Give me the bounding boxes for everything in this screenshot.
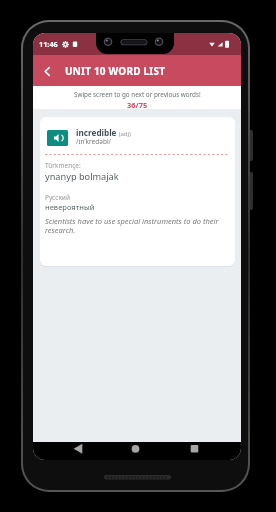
staticText: Swipe screen to go next or previous word… — [74, 90, 201, 99]
button[interactable] — [33, 442, 241, 460]
staticText: невероятный — [45, 202, 95, 212]
staticText: 36/75 — [127, 100, 148, 109]
staticText: 11:46 — [39, 39, 58, 49]
staticText: /ɪnˈkredəbl/ — [76, 137, 112, 146]
staticText: UNIT 10 WORD LIST — [65, 64, 166, 78]
button[interactable] — [47, 130, 68, 146]
button[interactable] — [33, 57, 61, 85]
staticText: Türkmençe: — [45, 161, 81, 170]
staticText: incredible (adj) — [76, 127, 131, 138]
staticText: ynanyp bolmajak — [45, 170, 119, 183]
button[interactable]: incredible (adj) — [40, 117, 235, 266]
staticText: Scientists have to use special instrumen… — [45, 216, 234, 236]
staticText: Русский — [45, 193, 70, 202]
